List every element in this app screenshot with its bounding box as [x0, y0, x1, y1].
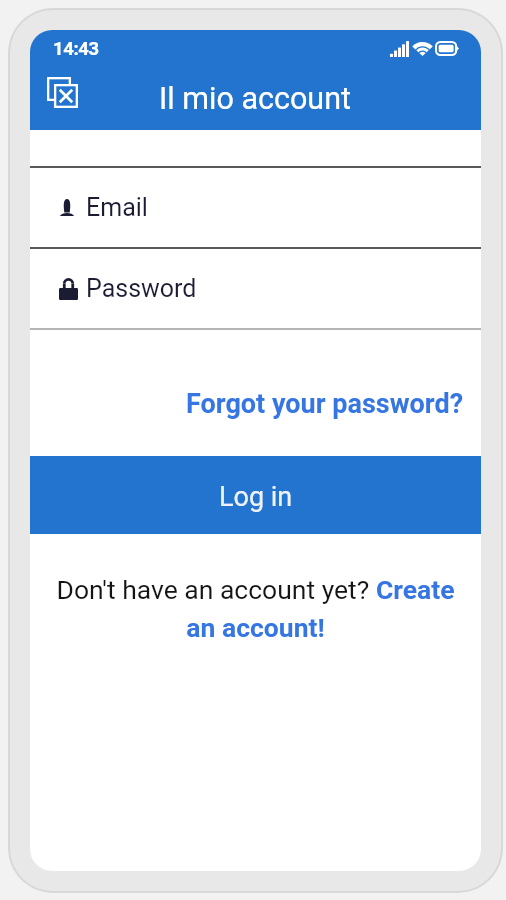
staticText: Log in	[219, 481, 293, 513]
button[interactable]: Password	[30, 249, 481, 328]
staticText: Email	[86, 193, 148, 222]
staticText: Il mio account	[159, 81, 351, 117]
button[interactable]: Close	[38, 68, 86, 116]
staticText: Password	[86, 274, 197, 303]
button[interactable]: Don't have an account yet? Create an acc…	[52, 574, 459, 644]
staticText: Forgot your password?	[186, 388, 464, 420]
button[interactable]: Forgot your password?	[30, 330, 481, 456]
staticText: 14:43	[53, 38, 99, 60]
staticText: Don't have an account yet? Create an acc…	[52, 574, 459, 644]
button[interactable]: Email	[30, 168, 481, 247]
button[interactable]: Log in	[30, 456, 481, 534]
